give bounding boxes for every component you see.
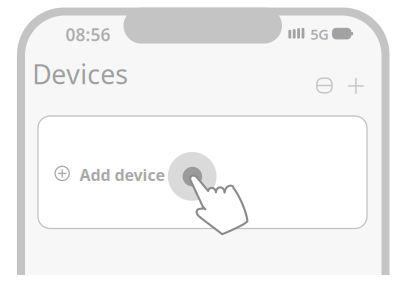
button[interactable]: Add device xyxy=(38,116,367,228)
staticText: Devices xyxy=(32,56,128,91)
button[interactable]: Hubs xyxy=(316,77,333,94)
staticText: 08:56 xyxy=(65,23,110,46)
button[interactable]: Add device xyxy=(348,78,364,94)
staticText: 5G xyxy=(310,24,329,44)
staticText: Add device xyxy=(79,164,165,185)
